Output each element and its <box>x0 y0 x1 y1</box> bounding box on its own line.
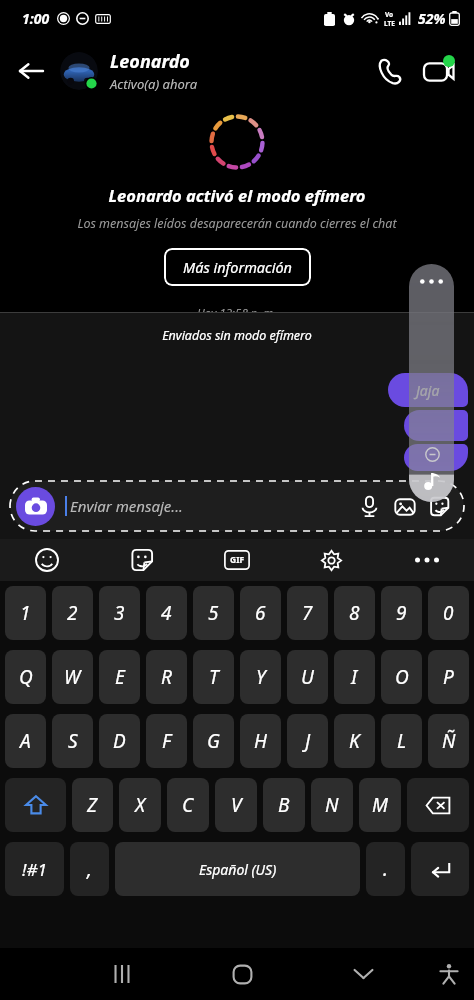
button[interactable]: Volume control <box>409 264 454 502</box>
staticText: 3 <box>114 600 125 626</box>
staticText: I <box>351 664 358 690</box>
button[interactable]: D <box>99 714 140 768</box>
button[interactable]: R <box>146 650 187 704</box>
button[interactable]: Recents <box>61 948 182 1000</box>
staticText: V <box>231 792 242 818</box>
staticText: U <box>301 664 314 690</box>
button[interactable]: V <box>215 778 257 832</box>
staticText: S <box>68 728 78 754</box>
staticText: Enviados sin modo efímero <box>0 327 474 344</box>
staticText: T <box>209 664 219 690</box>
button[interactable]: T <box>193 650 234 704</box>
staticText: A <box>20 728 31 754</box>
button[interactable]: Hide keyboard <box>303 948 424 1000</box>
button[interactable]: Ñ <box>428 714 469 768</box>
button[interactable]: Back <box>8 48 54 94</box>
staticText: GIF <box>230 554 245 566</box>
button[interactable] <box>404 444 468 471</box>
button[interactable]: U <box>287 650 328 704</box>
button[interactable]: C <box>167 778 209 832</box>
button[interactable]: N <box>311 778 353 832</box>
staticText: Z <box>87 792 98 818</box>
button[interactable]: S <box>52 714 93 768</box>
button[interactable]: Keyboard settings <box>284 539 379 581</box>
button[interactable]: E <box>99 650 140 704</box>
staticText: 6 <box>255 600 266 626</box>
staticText: 4 <box>161 600 172 626</box>
staticText: E <box>115 664 125 690</box>
button[interactable]: Stickers <box>94 539 189 581</box>
button[interactable]: GIF <box>189 539 284 581</box>
staticText: Jaja <box>416 381 440 400</box>
staticText: Ñ <box>442 728 456 754</box>
staticText: W <box>64 664 81 690</box>
button[interactable]: 5 <box>193 586 234 640</box>
button[interactable]: Camera <box>16 487 55 526</box>
staticText: 0 <box>443 600 454 626</box>
button[interactable]: Stickers <box>422 489 457 524</box>
button[interactable]: Español (US) <box>115 842 360 896</box>
button[interactable]: Emoji <box>0 539 94 581</box>
staticText: D <box>113 728 126 754</box>
button[interactable]: 8 <box>334 586 375 640</box>
button[interactable]: 1 <box>5 586 46 640</box>
button[interactable]: 2 <box>52 586 93 640</box>
staticText: Hoy 12:58 p. m. <box>197 305 277 312</box>
button[interactable]: 6 <box>240 586 281 640</box>
staticText: LTE <box>384 19 395 28</box>
staticText: Enviar mensaje... <box>70 496 352 516</box>
button[interactable]: L <box>381 714 422 768</box>
button[interactable]: Más información <box>164 248 311 286</box>
button[interactable]: Accessibility <box>424 948 474 1000</box>
button[interactable]: Q <box>5 650 46 704</box>
button[interactable]: 4 <box>146 586 187 640</box>
button[interactable]: B <box>263 778 305 832</box>
button[interactable]: Video call <box>414 46 464 96</box>
button[interactable]: More options <box>379 539 474 581</box>
button[interactable]: F <box>146 714 187 768</box>
button[interactable]: Backspace <box>407 778 469 832</box>
button[interactable]: P <box>428 650 469 704</box>
button[interactable]: I <box>334 650 375 704</box>
staticText: Activo(a) ahora <box>110 75 198 93</box>
button[interactable]: 0 <box>428 586 469 640</box>
button[interactable]: Jaja <box>388 373 468 407</box>
button[interactable]: 9 <box>381 586 422 640</box>
button[interactable]: K <box>334 714 375 768</box>
button[interactable]: J <box>287 714 328 768</box>
button[interactable] <box>404 410 468 441</box>
button[interactable]: Gallery <box>387 489 422 524</box>
button[interactable]: . <box>366 842 405 896</box>
staticText: P <box>443 664 454 690</box>
button[interactable]: 7 <box>287 586 328 640</box>
staticText: B <box>278 792 290 818</box>
staticText: L <box>397 728 407 754</box>
staticText: Q <box>19 664 33 690</box>
staticText: 1 <box>20 600 31 626</box>
button[interactable]: Voice message <box>352 489 387 524</box>
staticText: N <box>325 792 339 818</box>
button[interactable]: O <box>381 650 422 704</box>
staticText: O <box>395 664 409 690</box>
button[interactable]: W <box>52 650 93 704</box>
button[interactable]: A <box>5 714 46 768</box>
staticText: Español (US) <box>199 860 277 879</box>
button[interactable]: Home <box>182 948 303 1000</box>
button[interactable]: Z <box>72 778 113 832</box>
button[interactable]: H <box>240 714 281 768</box>
button[interactable]: M <box>359 778 401 832</box>
button[interactable]: Shift <box>5 778 66 832</box>
button[interactable]: Leonardo <box>60 49 364 93</box>
button[interactable]: Enter <box>411 842 469 896</box>
button[interactable]: 3 <box>99 586 140 640</box>
staticText: Vo <box>385 10 394 19</box>
button[interactable]: Y <box>240 650 281 704</box>
button[interactable]: G <box>193 714 234 768</box>
button[interactable]: !#1 <box>5 842 64 896</box>
button[interactable]: Call <box>364 46 414 96</box>
button[interactable]: X <box>119 778 161 832</box>
staticText: 2 <box>67 600 78 626</box>
staticText: X <box>135 792 146 818</box>
staticText: M <box>372 792 388 818</box>
button[interactable]: , <box>70 842 109 896</box>
